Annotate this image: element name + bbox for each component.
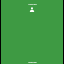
button[interactable]: Profile <box>28 7 36 12</box>
staticText: Settings <box>28 61 37 64</box>
staticText: Account <box>28 3 37 6</box>
